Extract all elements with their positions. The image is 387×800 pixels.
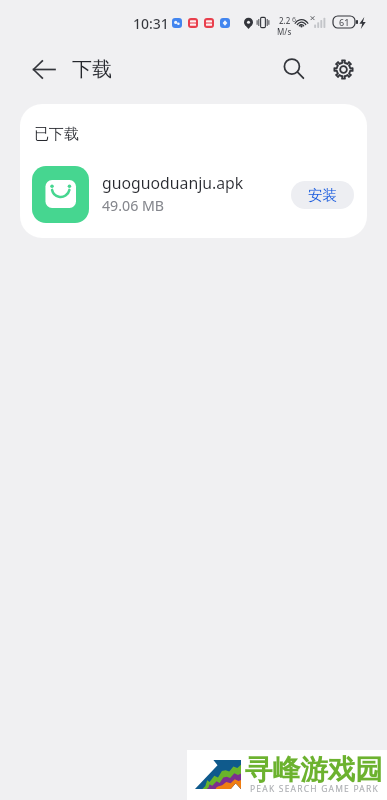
staticText: 61	[339, 16, 350, 28]
button[interactable]: Search	[271, 46, 317, 92]
staticText: 下载	[72, 57, 112, 82]
staticText: M/s	[277, 26, 292, 37]
staticText: guoguoduanju.apk	[102, 172, 244, 194]
staticText: PEAK SEARCH GAME PARK	[250, 783, 379, 795]
staticText: 49.06 MB	[102, 196, 165, 215]
staticText: 寻峰游戏园	[245, 752, 383, 787]
staticText: 6	[292, 15, 297, 25]
button[interactable]: Settings	[320, 46, 366, 92]
staticText: 安装	[308, 186, 338, 204]
staticText: 10:31	[133, 14, 169, 33]
staticText: 2.2	[279, 15, 291, 26]
staticText: 已下载	[34, 125, 79, 144]
button[interactable]: 安装	[291, 181, 354, 209]
button[interactable]: Back	[21, 46, 67, 92]
